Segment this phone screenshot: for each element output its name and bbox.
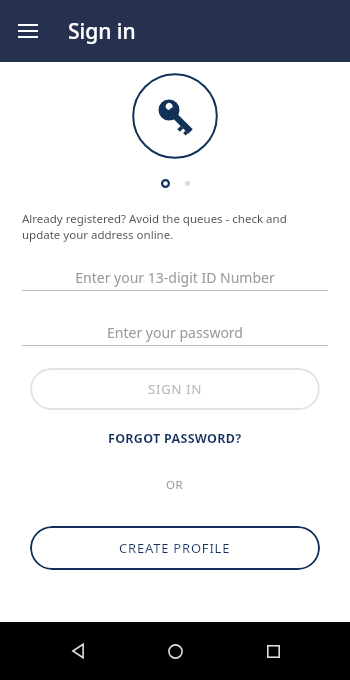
staticText: FORGOT PASSWORD? xyxy=(108,430,242,447)
button[interactable]: Enter your 13-digit ID Number xyxy=(22,264,328,291)
button[interactable]: Home xyxy=(155,631,195,671)
staticText: Enter your 13-digit ID Number xyxy=(75,268,275,287)
staticText: Already registered? Avoid the queues - c… xyxy=(22,211,328,242)
button[interactable]: Recent apps xyxy=(253,631,293,671)
staticText: Sign in xyxy=(68,17,136,46)
button[interactable]: FORGOT PASSWORD? xyxy=(100,426,250,451)
button[interactable]: Menu xyxy=(8,11,48,51)
staticText: OR xyxy=(166,477,184,493)
staticText: SIGN IN xyxy=(148,380,203,398)
button[interactable]: SIGN IN xyxy=(30,368,320,410)
staticText: Enter your password xyxy=(107,323,243,342)
staticText: CREATE PROFILE xyxy=(119,539,231,557)
button[interactable]: Back xyxy=(58,631,98,671)
button[interactable]: CREATE PROFILE xyxy=(30,526,320,570)
button[interactable]: Enter your password xyxy=(22,319,328,346)
